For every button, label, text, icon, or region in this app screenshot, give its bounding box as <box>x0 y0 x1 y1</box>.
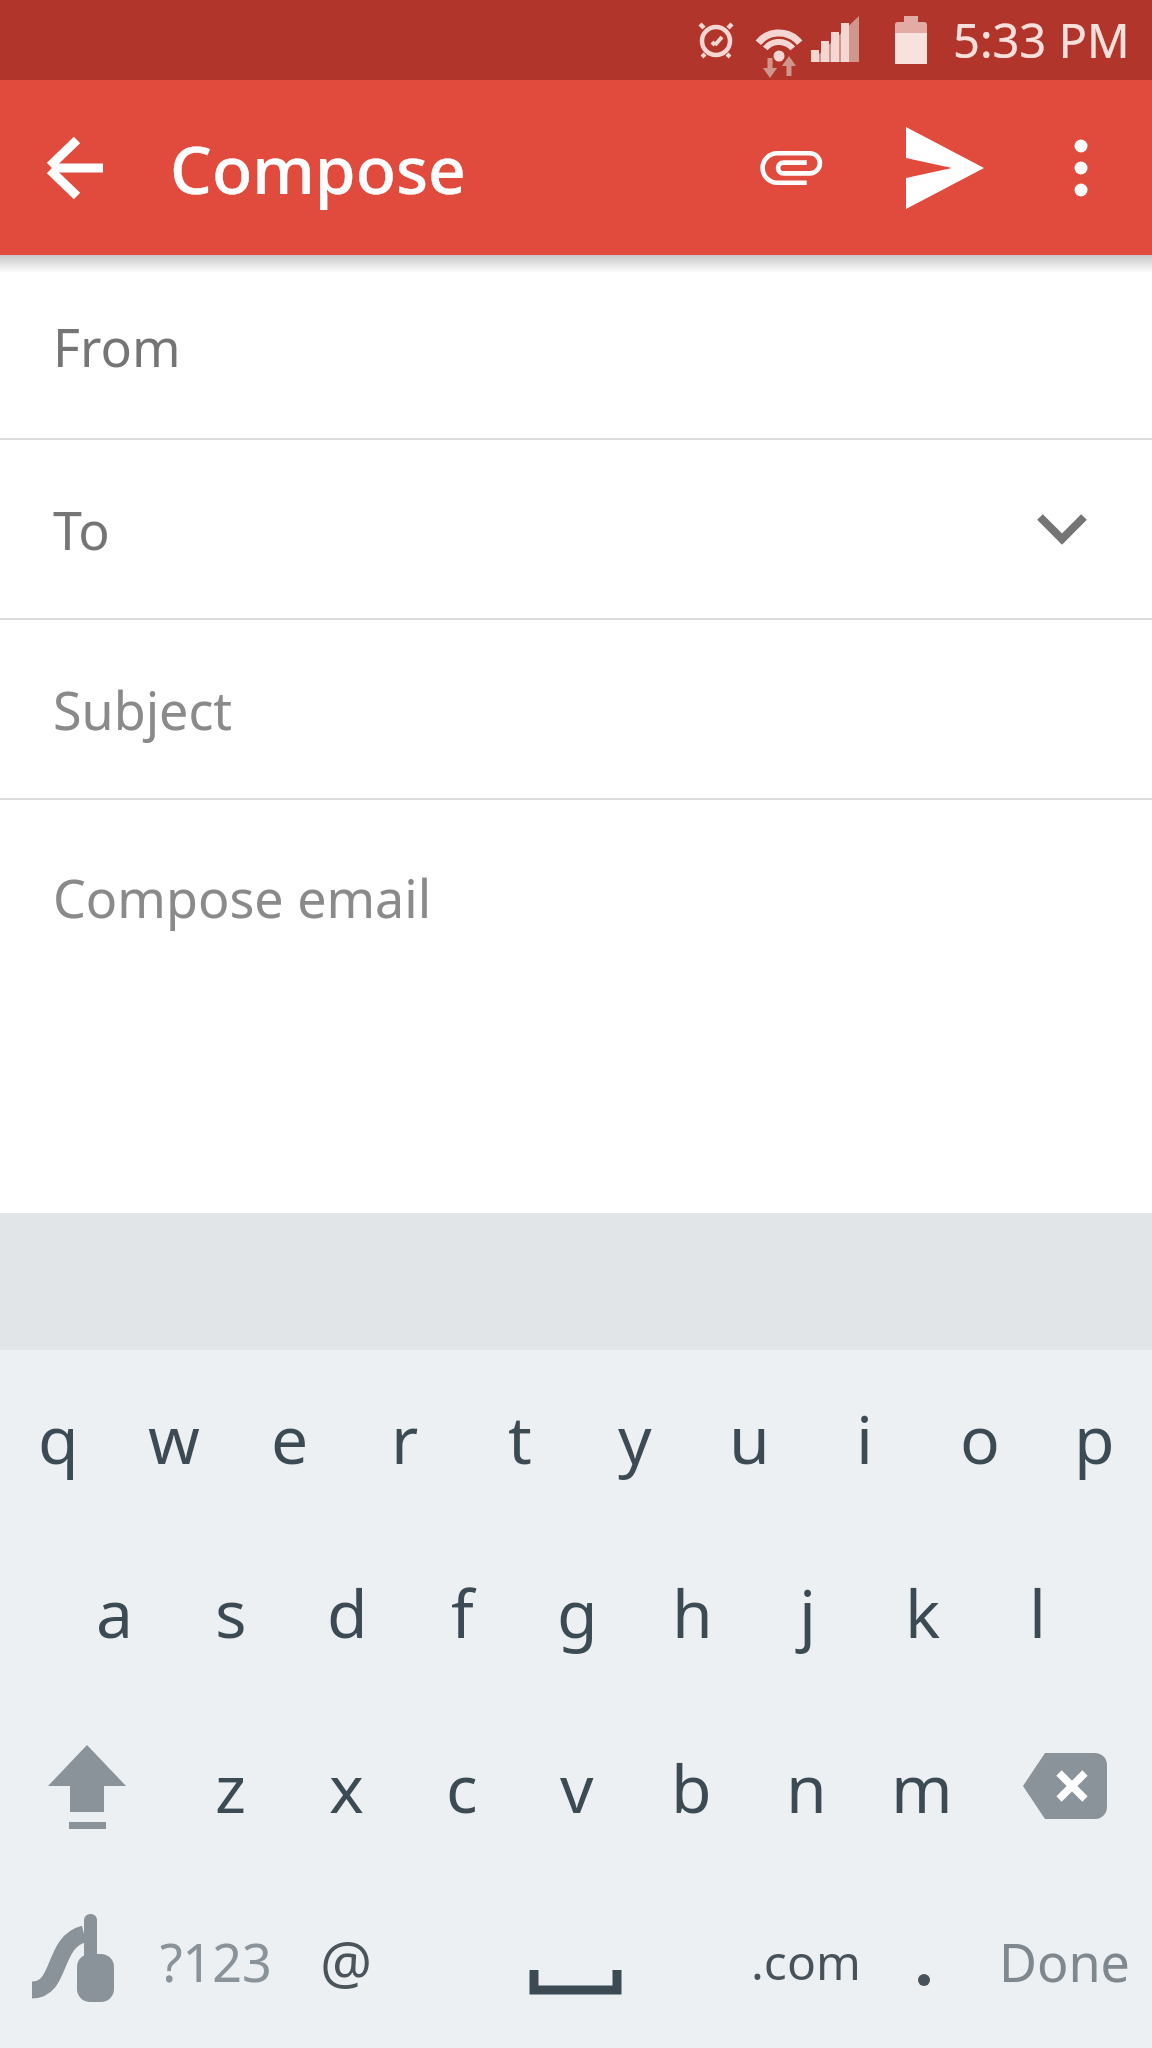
button[interactable]: .com <box>740 1874 872 2048</box>
button[interactable] <box>0 80 125 255</box>
button[interactable]: Done <box>976 1874 1152 2048</box>
button[interactable]: s <box>173 1525 289 1699</box>
staticText: w <box>148 1393 200 1483</box>
staticText: ?123 <box>160 1926 272 1997</box>
button[interactable]: m <box>864 1699 979 1874</box>
button[interactable]: From <box>0 255 1152 438</box>
staticText: Compose email <box>53 862 432 933</box>
button[interactable]: o <box>922 1350 1037 1525</box>
button[interactable]: u <box>692 1350 807 1525</box>
button[interactable]: v <box>519 1699 634 1874</box>
button[interactable]: n <box>749 1699 864 1874</box>
staticText: k <box>905 1567 941 1657</box>
staticText: To <box>53 494 110 565</box>
button[interactable]: c <box>404 1699 519 1874</box>
button[interactable] <box>1021 80 1141 255</box>
button[interactable]: Compose email <box>0 800 1152 1213</box>
button[interactable]: e <box>232 1350 347 1525</box>
button[interactable] <box>872 1874 976 2048</box>
button[interactable] <box>732 80 852 255</box>
staticText: From <box>53 311 181 382</box>
button[interactable] <box>979 1699 1152 1874</box>
button[interactable]: @ <box>282 1874 410 2048</box>
button[interactable] <box>885 80 1005 255</box>
staticText: e <box>271 1393 309 1483</box>
staticText: q <box>38 1393 79 1483</box>
button[interactable]: t <box>462 1350 577 1525</box>
staticText: j <box>799 1567 817 1657</box>
staticText: c <box>446 1742 478 1832</box>
button[interactable]: w <box>116 1350 232 1525</box>
button[interactable]: j <box>750 1525 865 1699</box>
staticText: a <box>96 1567 134 1657</box>
staticText: t <box>508 1393 532 1483</box>
staticText: i <box>856 1393 874 1483</box>
button[interactable] <box>0 1699 173 1874</box>
button[interactable]: g <box>520 1525 635 1699</box>
button[interactable]: f <box>405 1525 520 1699</box>
button[interactable]: d <box>289 1525 405 1699</box>
staticText: r <box>391 1393 419 1483</box>
button[interactable]: h <box>635 1525 750 1699</box>
staticText: h <box>672 1567 713 1657</box>
button[interactable]: x <box>289 1699 404 1874</box>
button[interactable] <box>410 1874 740 2048</box>
button[interactable]: i <box>807 1350 922 1525</box>
staticText: Subject <box>53 674 233 745</box>
staticText: @ <box>320 1922 373 2001</box>
staticText: Done <box>999 1926 1130 1997</box>
staticText: b <box>671 1742 712 1832</box>
staticText: y <box>618 1393 652 1483</box>
staticText: Compose <box>170 123 466 213</box>
staticText: d <box>327 1567 368 1657</box>
button[interactable]: Subject <box>0 620 1152 798</box>
staticText: v <box>560 1742 594 1832</box>
staticText: u <box>729 1393 770 1483</box>
button[interactable]: p <box>1037 1350 1152 1525</box>
button[interactable]: To <box>0 440 1152 618</box>
button[interactable]: k <box>865 1525 980 1699</box>
staticText: .com <box>751 1929 861 1994</box>
button[interactable]: b <box>634 1699 749 1874</box>
staticText: 5:33 PM <box>953 8 1130 72</box>
button[interactable]: y <box>577 1350 692 1525</box>
staticText: n <box>786 1742 827 1832</box>
button[interactable]: r <box>347 1350 462 1525</box>
button[interactable]: q <box>0 1350 116 1525</box>
button[interactable]: z <box>173 1699 289 1874</box>
button[interactable] <box>0 1874 150 2048</box>
staticText: f <box>451 1567 474 1657</box>
staticText: l <box>1029 1567 1047 1657</box>
button[interactable]: ?123 <box>150 1874 282 2048</box>
staticText: m <box>891 1742 953 1832</box>
staticText: s <box>215 1567 247 1657</box>
button[interactable]: l <box>980 1525 1095 1699</box>
staticText: p <box>1074 1393 1115 1483</box>
staticText: z <box>215 1742 247 1832</box>
staticText: g <box>557 1567 598 1657</box>
staticText: x <box>329 1742 364 1832</box>
button[interactable]: a <box>57 1525 173 1699</box>
staticText: o <box>960 1393 1000 1483</box>
